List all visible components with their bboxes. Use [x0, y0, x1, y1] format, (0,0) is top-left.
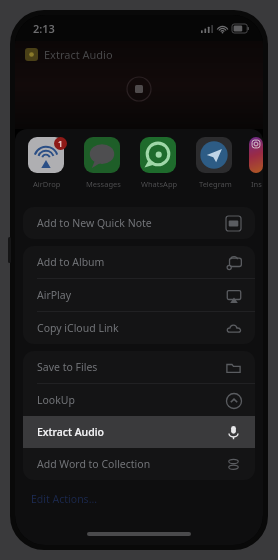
- staticText: Add to New Quick Note: [37, 216, 225, 230]
- button[interactable]: 1: [25, 137, 69, 189]
- staticText: 2:13: [33, 21, 55, 36]
- staticText: Edit Actions...: [31, 492, 98, 506]
- button[interactable]: WhatsApp: [137, 137, 181, 189]
- staticText: AirPlay: [37, 288, 225, 302]
- staticText: Extract Audio: [44, 47, 113, 62]
- staticText: Ins: [251, 179, 262, 189]
- button[interactable]: Edit Actions...: [29, 490, 100, 508]
- button[interactable]: Add to New Quick Note: [23, 207, 255, 239]
- staticText: AirDrop: [33, 179, 61, 189]
- staticText: WhatsApp: [141, 179, 178, 189]
- staticText: Copy iCloud Link: [37, 321, 225, 335]
- button[interactable]: AirPlay: [23, 279, 255, 311]
- staticText: Save to Files: [37, 360, 225, 374]
- button[interactable]: Copy iCloud Link: [23, 312, 255, 344]
- button[interactable]: Ins: [249, 137, 263, 189]
- staticText: Extract Audio: [37, 425, 225, 439]
- staticText: LookUp: [37, 393, 225, 407]
- button[interactable]: Extract Audio: [23, 416, 255, 448]
- button[interactable]: Add Word to Collection: [23, 448, 255, 480]
- button[interactable]: Messages: [81, 137, 125, 189]
- button[interactable]: Telegram: [193, 137, 237, 189]
- staticText: Telegram: [199, 179, 232, 189]
- button[interactable]: Save to Files: [23, 351, 255, 383]
- staticText: Add to Album: [37, 255, 225, 269]
- staticText: 1: [58, 138, 63, 149]
- staticText: Add Word to Collection: [37, 457, 225, 471]
- button[interactable]: Add to Album: [23, 246, 255, 278]
- staticText: Messages: [86, 179, 121, 189]
- button[interactable]: LookUp: [23, 384, 255, 416]
